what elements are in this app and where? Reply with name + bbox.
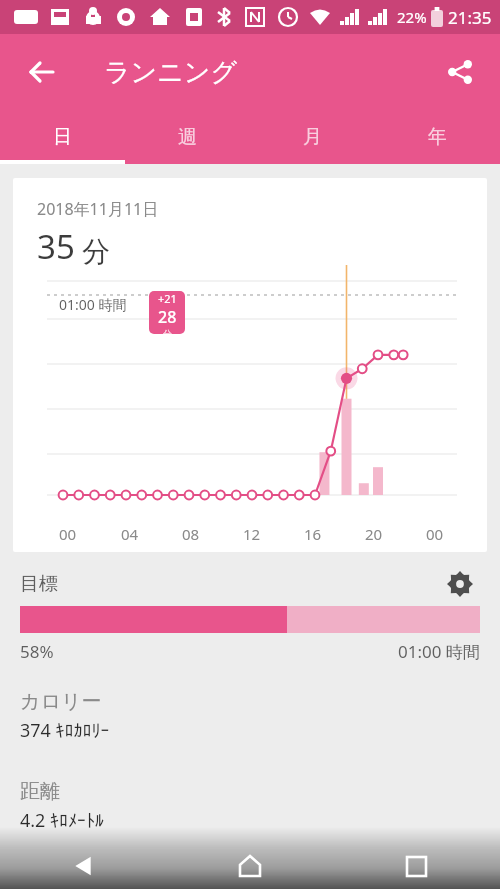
button[interactable]: Back <box>0 827 166 889</box>
staticText: 月 <box>303 125 322 149</box>
staticText: 374 ｷﾛｶﾛﾘｰ <box>20 718 110 743</box>
button[interactable]: 週 <box>125 110 250 164</box>
staticText: 分 <box>163 328 172 334</box>
staticText: 距離 <box>20 779 60 804</box>
staticText: 4.2 ｷﾛﾒｰﾄﾙ <box>20 808 105 833</box>
staticText: ランニング <box>104 56 238 89</box>
staticText: 21:35 <box>448 6 492 29</box>
staticText: 分 <box>82 234 110 269</box>
staticText: 35 <box>37 224 75 269</box>
button[interactable]: 年 <box>375 110 500 164</box>
button[interactable]: Home <box>166 827 333 889</box>
staticText: 22% <box>397 7 427 27</box>
staticText: +21 <box>158 291 177 306</box>
button[interactable]: Back <box>20 50 64 94</box>
staticText: 日 <box>53 125 72 149</box>
button[interactable]: Recents <box>333 827 500 889</box>
staticText: 年 <box>428 125 447 149</box>
staticText: 58% <box>20 640 54 663</box>
staticText: 01:00 時間 <box>59 295 127 314</box>
button[interactable]: 距離 <box>0 779 500 833</box>
staticText: 16 <box>304 524 322 544</box>
staticText: 2018年11月11日 <box>37 198 159 220</box>
staticText: 12 <box>243 524 261 544</box>
staticText: 04 <box>121 524 139 544</box>
staticText: 目標 <box>20 572 58 596</box>
button[interactable]: 日 <box>0 110 125 164</box>
button[interactable]: カロリー <box>0 689 500 743</box>
staticText: 00 <box>59 524 77 544</box>
staticText: カロリー <box>20 689 102 714</box>
button[interactable]: 2018年11月11日 <box>13 178 487 552</box>
button[interactable]: Share <box>438 50 482 94</box>
staticText: 週 <box>178 125 197 149</box>
staticText: 00 <box>426 524 444 544</box>
staticText: 01:00 時間 <box>398 640 480 663</box>
button[interactable]: 月 <box>250 110 375 164</box>
staticText: 08 <box>182 524 200 544</box>
staticText: 28 <box>158 306 177 328</box>
staticText: 20 <box>365 524 383 544</box>
button[interactable]: Settings <box>440 564 480 604</box>
